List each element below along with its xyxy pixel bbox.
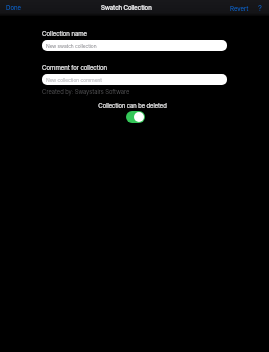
staticText: New collection comment <box>46 77 102 83</box>
button[interactable]: New collection comment <box>42 74 227 85</box>
staticText: Comment for collection <box>42 64 107 72</box>
button[interactable]: Help <box>257 2 263 15</box>
staticText: Revert <box>230 5 249 13</box>
button[interactable]: New swatch collection <box>42 40 227 51</box>
staticText: ? <box>258 4 262 13</box>
staticText: Done <box>6 4 22 12</box>
staticText: Collection can be deleted <box>98 102 167 110</box>
staticText: New swatch collection <box>46 43 97 49</box>
staticText: Created by: Swaystairs Software <box>42 88 130 96</box>
staticText: Swatch Collection <box>101 4 152 12</box>
button[interactable]: Done <box>5 2 23 14</box>
button[interactable]: Revert <box>229 3 250 15</box>
button[interactable]: Collection can be deleted <box>126 111 145 123</box>
staticText: Collection name <box>42 30 88 38</box>
